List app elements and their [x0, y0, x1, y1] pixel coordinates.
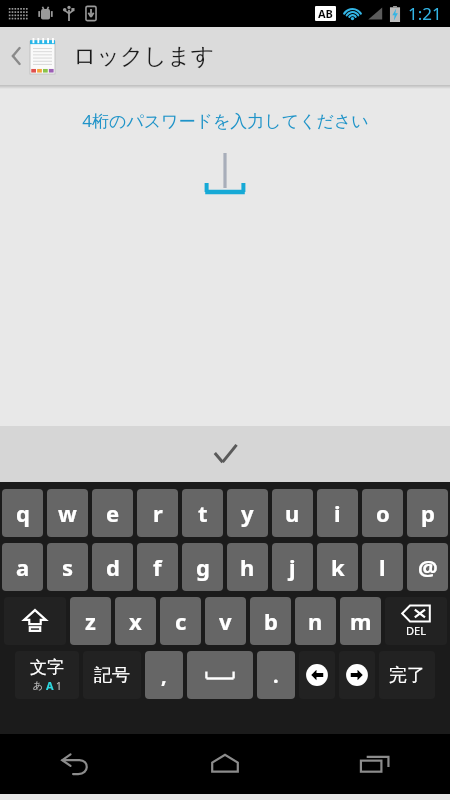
- button[interactable]: y: [227, 489, 268, 537]
- other: Shift: [22, 608, 48, 634]
- button[interactable]: Recent apps: [300, 734, 450, 794]
- button[interactable]: 文字: [15, 651, 79, 699]
- staticText: m: [350, 606, 372, 636]
- staticText: e: [106, 498, 120, 528]
- staticText: p: [421, 498, 435, 528]
- staticText: b: [264, 606, 278, 636]
- staticText: @: [418, 552, 438, 582]
- staticText: 1: [56, 679, 62, 693]
- staticText: s: [62, 552, 74, 582]
- button[interactable]: q: [2, 489, 43, 537]
- staticText: f: [153, 552, 162, 582]
- button[interactable]: a: [2, 543, 43, 591]
- button[interactable]: 完了: [379, 651, 435, 699]
- button[interactable]: w: [47, 489, 88, 537]
- staticText: DEL: [406, 623, 426, 638]
- button[interactable]: t: [182, 489, 223, 537]
- staticText: l: [379, 552, 386, 582]
- button[interactable]: .: [257, 651, 295, 699]
- button[interactable]: k: [317, 543, 358, 591]
- staticText: AB: [318, 6, 333, 21]
- button[interactable]: x: [115, 597, 156, 645]
- button[interactable]: @: [407, 543, 448, 591]
- button[interactable]: i: [317, 489, 358, 537]
- button[interactable]: f: [137, 543, 178, 591]
- staticText: k: [331, 552, 345, 582]
- staticText: x: [129, 606, 142, 636]
- staticText: 1:21: [408, 2, 442, 25]
- button[interactable]: b: [250, 597, 291, 645]
- staticText: r: [153, 498, 163, 528]
- staticText: i: [334, 498, 341, 528]
- button[interactable]: p: [407, 489, 448, 537]
- button[interactable]: u: [272, 489, 313, 537]
- button[interactable]: h: [227, 543, 268, 591]
- button[interactable]: e: [92, 489, 133, 537]
- button[interactable]: Shift: [4, 597, 66, 645]
- staticText: w: [58, 498, 77, 528]
- staticText: d: [106, 552, 120, 582]
- button[interactable]: Home: [150, 734, 300, 794]
- staticText: q: [16, 498, 30, 528]
- staticText: n: [308, 606, 323, 636]
- button[interactable]: r: [137, 489, 178, 537]
- button[interactable]: d: [92, 543, 133, 591]
- staticText: z: [85, 606, 96, 636]
- button[interactable]: ,: [145, 651, 183, 699]
- button[interactable]: Back: [0, 38, 61, 74]
- button[interactable]: [202, 150, 248, 200]
- button[interactable]: o: [362, 489, 403, 537]
- staticText: c: [175, 606, 187, 636]
- button[interactable]: c: [160, 597, 201, 645]
- staticText: a: [16, 552, 30, 582]
- staticText: y: [241, 498, 254, 528]
- button[interactable]: g: [182, 543, 223, 591]
- button[interactable]: Space: [187, 651, 253, 699]
- button[interactable]: l: [362, 543, 403, 591]
- button[interactable]: m: [340, 597, 381, 645]
- button[interactable]: Cursor right: [339, 651, 375, 699]
- button[interactable]: j: [272, 543, 313, 591]
- staticText: t: [198, 498, 208, 528]
- button[interactable]: Confirm: [0, 426, 450, 482]
- staticText: ロックします: [73, 42, 215, 71]
- button[interactable]: 記号: [83, 651, 141, 699]
- staticText: 記号: [94, 664, 130, 687]
- other: Delete: [401, 604, 431, 623]
- other: Back: [10, 45, 22, 67]
- staticText: h: [240, 552, 255, 582]
- button[interactable]: Delete: [385, 597, 447, 645]
- button[interactable]: Back: [0, 734, 150, 794]
- staticText: A: [46, 678, 54, 693]
- staticText: 文字: [30, 657, 64, 678]
- button[interactable]: z: [70, 597, 111, 645]
- other: Cursor right: [344, 662, 370, 688]
- button[interactable]: s: [47, 543, 88, 591]
- staticText: 4桁のパスワードを入力してください: [82, 109, 369, 132]
- button[interactable]: n: [295, 597, 336, 645]
- staticText: u: [285, 498, 300, 528]
- other: Cursor left: [304, 662, 330, 688]
- staticText: j: [289, 552, 296, 582]
- other: Space: [203, 667, 237, 683]
- button[interactable]: v: [205, 597, 246, 645]
- staticText: o: [376, 498, 390, 528]
- staticText: v: [219, 606, 232, 636]
- staticText: g: [196, 552, 210, 582]
- staticText: .: [273, 662, 279, 689]
- staticText: ,: [161, 662, 167, 689]
- staticText: あ: [33, 679, 44, 692]
- button[interactable]: Cursor left: [299, 651, 335, 699]
- staticText: 完了: [389, 664, 425, 687]
